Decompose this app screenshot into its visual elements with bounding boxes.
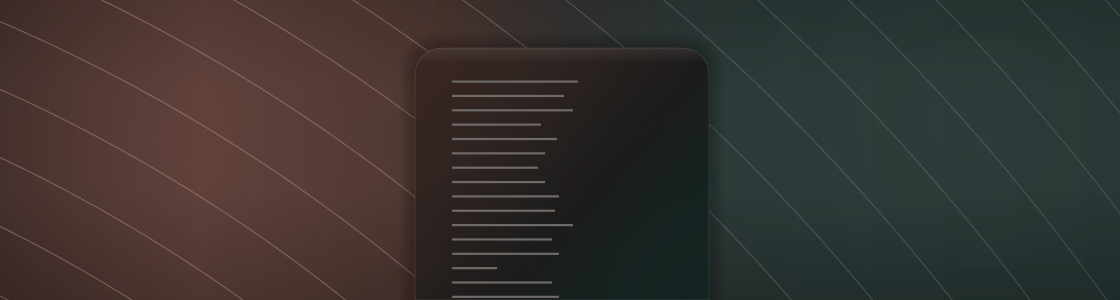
button[interactable]: Document preview <box>0 0 1120 300</box>
